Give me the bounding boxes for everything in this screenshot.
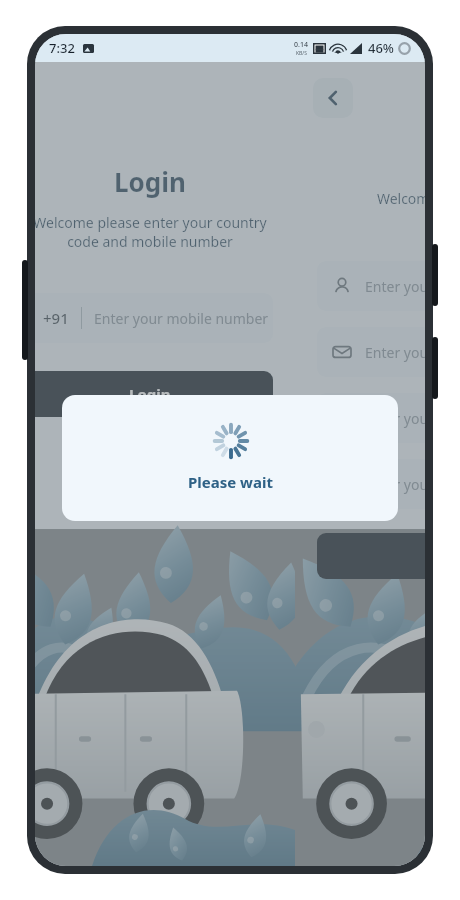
staticText: KB/S — [296, 50, 307, 57]
staticText: 46% — [368, 39, 394, 57]
staticText: Welcome please enter your country code a… — [35, 213, 271, 251]
button[interactable]: Enter your name — [317, 261, 425, 311]
staticText: Login — [114, 164, 186, 199]
button[interactable]: Enter your email — [317, 327, 425, 377]
button[interactable]: +91 — [35, 293, 273, 343]
staticText: Login — [129, 384, 171, 404]
staticText: Enter your name — [365, 277, 425, 296]
staticText: Enter your mobile — [365, 409, 425, 428]
button[interactable]: Back — [313, 78, 353, 118]
button[interactable]: Please wait — [62, 395, 398, 521]
button[interactable]: Register — [317, 533, 425, 579]
staticText: 7:32 — [49, 39, 75, 57]
staticText: Welcome please enter your details and re… — [319, 189, 425, 227]
staticText: Please wait — [188, 472, 273, 492]
button[interactable]: Enter your city — [317, 459, 425, 509]
staticText: 0.14 — [294, 40, 308, 50]
staticText: Enter your email — [365, 343, 425, 362]
button[interactable]: Enter your mobile — [317, 393, 425, 443]
staticText: Enter your city — [365, 475, 425, 494]
staticText: Enter your mobile number — [94, 309, 269, 328]
staticText: +91 — [43, 308, 69, 328]
button[interactable]: Login — [35, 371, 273, 417]
